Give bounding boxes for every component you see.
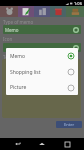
- button[interactable]: Shopping list: [6, 64, 78, 80]
- staticText: Shopping list: [10, 69, 67, 76]
- button[interactable]: Picture: [6, 80, 78, 95]
- button[interactable]: Animal icon: [0, 6, 18, 17]
- button[interactable]: Box icon: [66, 6, 84, 17]
- staticText: Text: [3, 54, 12, 60]
- button[interactable]: Memo: [3, 25, 81, 34]
- staticText: Enter: [64, 122, 75, 127]
- staticText: Type of memo: [3, 19, 34, 25]
- button[interactable]: [3, 43, 81, 52]
- staticText: 1:06: [74, 1, 82, 6]
- button[interactable]: Home: [35, 138, 49, 150]
- button[interactable]: [2, 59, 81, 118]
- button[interactable]: Memo: [6, 48, 78, 64]
- staticText: Icon: [3, 36, 13, 42]
- staticText: Memo: [5, 27, 19, 33]
- button[interactable]: Note icon: [18, 6, 34, 17]
- button[interactable]: Enter: [56, 121, 82, 128]
- staticText: Memo: [10, 53, 67, 60]
- staticText: Picture: [10, 84, 67, 91]
- button[interactable]: Bucket icon: [50, 6, 66, 17]
- button[interactable]: Recents: [60, 138, 74, 150]
- button[interactable]: List icon: [34, 6, 50, 17]
- button[interactable]: Back: [11, 138, 25, 150]
